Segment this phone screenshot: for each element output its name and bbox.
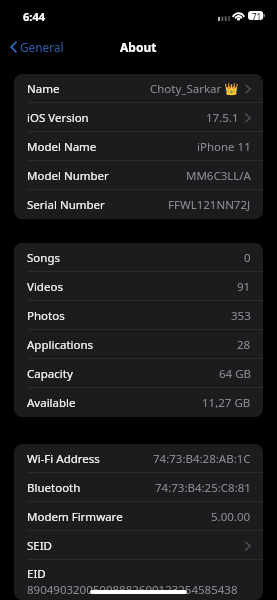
- staticText: Applications: [27, 337, 94, 353]
- staticText: Model Name: [27, 139, 97, 155]
- button[interactable]: Bluetooth: [14, 473, 263, 502]
- button[interactable]: Modem Firmware: [14, 502, 263, 531]
- staticText: Bluetooth: [27, 480, 81, 496]
- staticText: 74:73:B4:25:C8:81: [155, 480, 251, 496]
- button[interactable]: Wi-Fi Address: [14, 444, 263, 473]
- button[interactable]: Model Number: [14, 161, 263, 190]
- staticText: General: [20, 39, 64, 55]
- staticText: Model Number: [27, 168, 109, 184]
- staticText: Name: [27, 81, 60, 97]
- staticText: Songs: [27, 250, 60, 266]
- staticText: iPhone 11: [197, 139, 251, 155]
- button[interactable]: Capacity: [14, 359, 263, 388]
- staticText: 6:44: [23, 9, 45, 24]
- button[interactable]: Songs: [14, 243, 263, 272]
- button[interactable]: iOS Version: [14, 103, 263, 132]
- staticText: Capacity: [27, 366, 73, 382]
- button[interactable]: Applications: [14, 330, 263, 359]
- staticText: 28: [237, 337, 251, 353]
- button[interactable]: Name: [14, 74, 263, 103]
- staticText: 64 GB: [219, 366, 251, 382]
- button[interactable]: Available: [14, 388, 263, 417]
- button[interactable]: Photos: [14, 301, 263, 330]
- staticText: 5.00.00: [211, 509, 251, 525]
- button[interactable]: General: [0, 36, 72, 58]
- staticText: Wi-Fi Address: [27, 451, 100, 467]
- staticText: Serial Number: [27, 197, 105, 213]
- staticText: Available: [27, 395, 76, 411]
- staticText: Videos: [27, 279, 63, 295]
- button[interactable]: Model Name: [14, 132, 263, 161]
- staticText: 91: [237, 279, 251, 295]
- staticText: iOS Version: [27, 110, 89, 126]
- staticText: Photos: [27, 308, 65, 324]
- staticText: FFWL121NN72J: [168, 197, 251, 213]
- staticText: 71: [252, 11, 262, 20]
- button[interactable]: EID: [14, 560, 263, 600]
- button[interactable]: Videos: [14, 272, 263, 301]
- staticText: 17.5.1: [206, 110, 239, 126]
- staticText: MM6C3LL/A: [186, 168, 251, 184]
- button[interactable]: SEID: [14, 531, 263, 560]
- button[interactable]: Serial Number: [14, 190, 263, 219]
- staticText: 89049032005008882600123254585438: [27, 582, 238, 598]
- staticText: 74:73:B4:28:AB:1C: [153, 451, 251, 467]
- staticText: 353: [231, 308, 251, 324]
- staticText: Modem Firmware: [27, 509, 123, 525]
- staticText: SEID: [27, 538, 53, 554]
- staticText: 11,27 GB: [202, 395, 251, 411]
- staticText: EID: [27, 566, 46, 582]
- staticText: 0: [244, 250, 251, 266]
- staticText: Choty_Sarkar 👑: [150, 81, 239, 97]
- staticText: About: [120, 39, 157, 55]
